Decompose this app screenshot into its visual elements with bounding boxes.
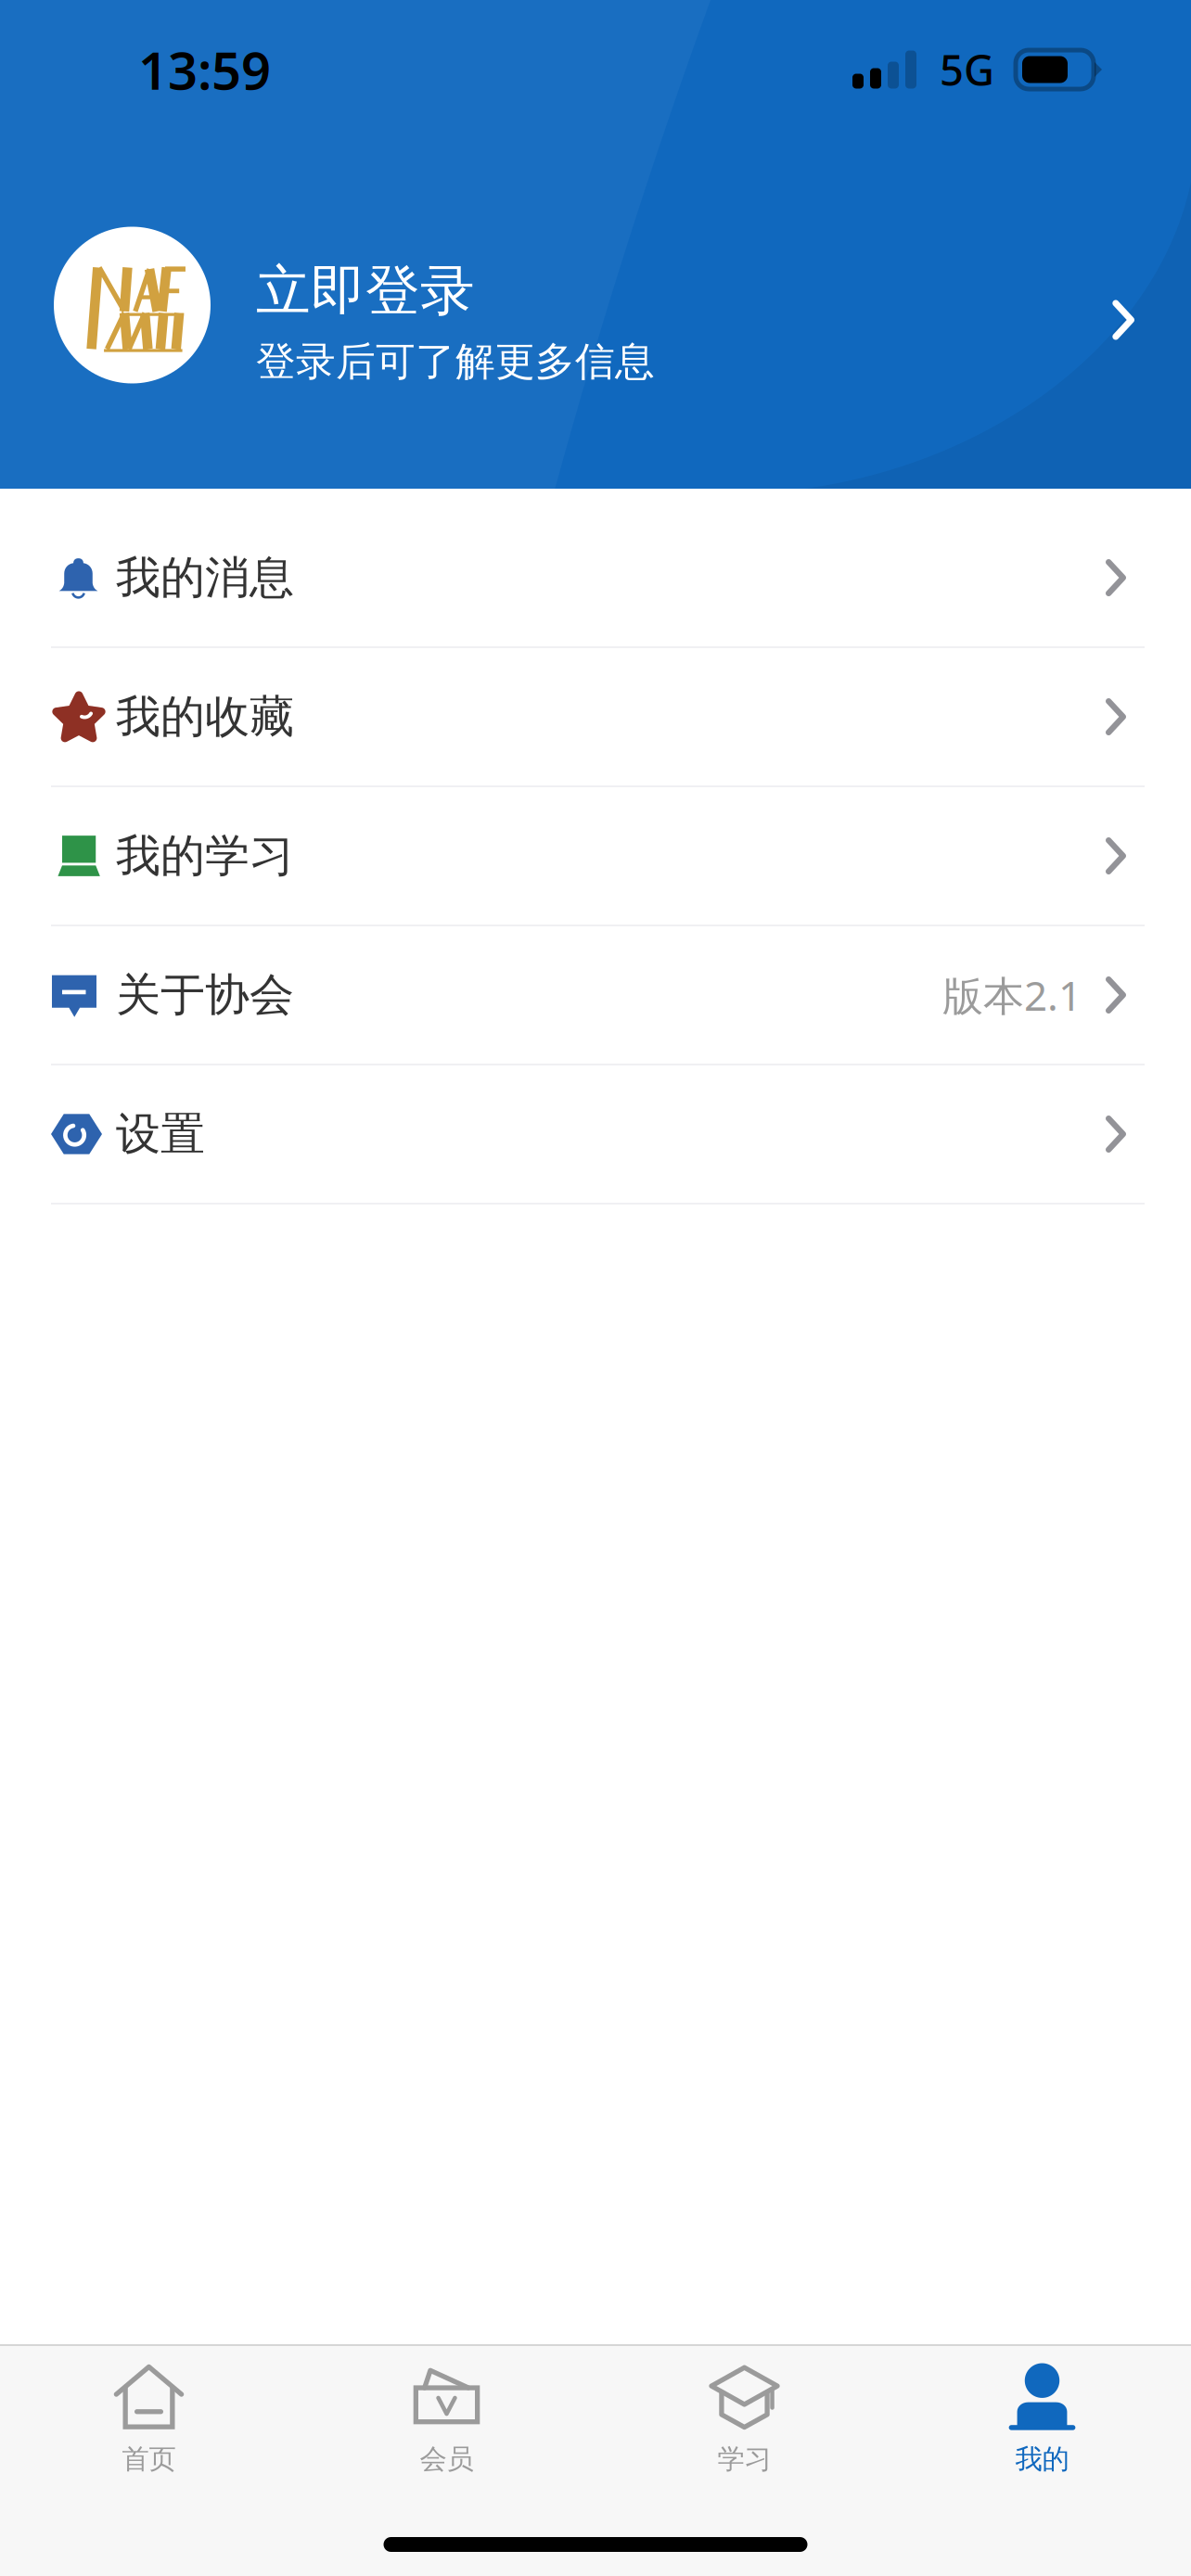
button[interactable]: 会员 bbox=[298, 2346, 595, 2483]
button[interactable]: 学习 bbox=[595, 2346, 893, 2483]
staticText: 13:59 bbox=[138, 35, 271, 104]
staticText: 登录后可了解更多信息 bbox=[256, 337, 655, 386]
button[interactable]: 我的学习 bbox=[0, 787, 1191, 925]
staticText: 设置 bbox=[116, 1107, 205, 1161]
staticText: 我的学习 bbox=[116, 829, 294, 883]
staticText: 我的 bbox=[1015, 2442, 1069, 2476]
button[interactable]: 我的 bbox=[893, 2346, 1191, 2483]
staticText: 立即登录 bbox=[256, 258, 475, 324]
staticText: 我的消息 bbox=[116, 550, 294, 605]
button[interactable]: 关于协会 bbox=[0, 926, 1191, 1064]
staticText: 学习 bbox=[717, 2442, 771, 2476]
staticText: 5G bbox=[940, 42, 994, 97]
button[interactable]: 设置 bbox=[0, 1065, 1191, 1203]
button[interactable]: 我的收藏 bbox=[0, 648, 1191, 785]
staticText: 首页 bbox=[122, 2442, 176, 2476]
staticText: 版本2.1 bbox=[942, 968, 1082, 1022]
button[interactable]: 首页 bbox=[0, 2346, 298, 2483]
button[interactable]: 立即登录 bbox=[0, 205, 1191, 405]
staticText: 我的收藏 bbox=[116, 689, 294, 744]
staticText: 关于协会 bbox=[116, 968, 294, 1022]
button[interactable]: 我的消息 bbox=[0, 509, 1191, 646]
staticText: 会员 bbox=[420, 2442, 474, 2476]
